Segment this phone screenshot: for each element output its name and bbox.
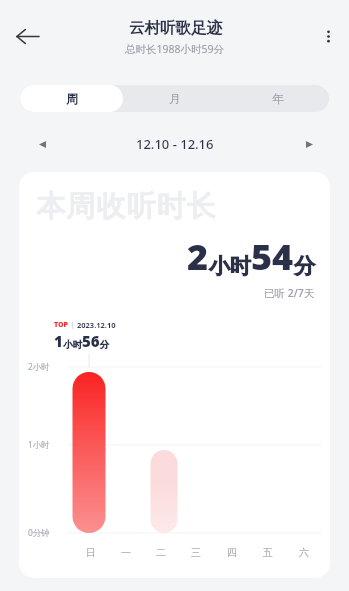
staticText: 一 [121,546,131,559]
staticText: 六 [299,546,309,559]
button[interactable]: Previous week [30,132,54,156]
staticText: 54 [251,232,294,281]
staticText: 二 [156,546,166,559]
staticText: 2 [187,232,209,281]
staticText: 周 [66,91,78,106]
staticText: 四 [227,546,237,559]
staticText: 云村听歌足迹 [129,18,222,38]
button[interactable]: TOP [47,316,139,353]
button[interactable]: 年 [226,85,329,112]
staticText: 小时 [63,339,82,351]
staticText: 月 [169,91,181,106]
staticText: 1 [54,331,63,351]
staticText: 已听 2/7天 [264,286,315,300]
button[interactable]: 周 [20,85,123,112]
staticText: 2023.12.10 [77,320,116,330]
staticText: 本周收听时长 [36,188,216,225]
staticText: 12.10 - 12.16 [136,135,214,153]
staticText: 五 [263,546,273,559]
staticText: 分 [294,253,315,279]
staticText: 2小时 [28,361,50,373]
staticText: 1小时 [28,439,50,451]
staticText: 日 [86,546,96,559]
staticText: 0分钟 [28,527,50,539]
button[interactable]: More options [311,19,345,53]
staticText: 三 [191,546,201,559]
staticText: 56 [82,331,100,351]
button[interactable]: Back [5,14,49,58]
staticText: 分 [100,339,110,351]
staticText: TOP [54,320,68,330]
staticText: 总时长1988小时59分 [125,42,225,56]
staticText: 小时 [209,253,251,279]
staticText: 年 [272,91,284,106]
button[interactable]: 月 [123,85,226,112]
button[interactable]: Next week [297,132,321,156]
